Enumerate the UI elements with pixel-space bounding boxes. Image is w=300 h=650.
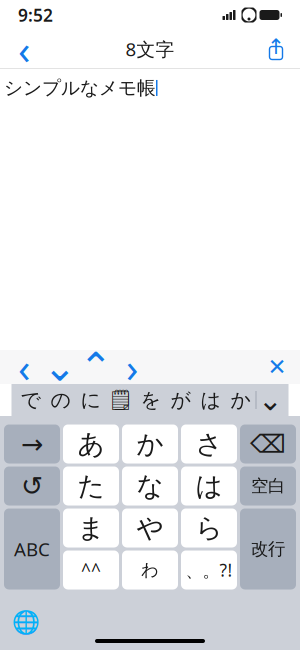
button[interactable]: ↺ <box>4 466 60 505</box>
staticText: ‹ <box>18 22 30 75</box>
staticText: さ <box>195 428 222 460</box>
staticText: あ <box>77 428 104 460</box>
button[interactable]: Next field <box>114 350 150 384</box>
button[interactable]: さ <box>181 424 237 463</box>
staticText: ⌄ <box>258 383 283 417</box>
staticText: わ <box>141 559 159 581</box>
staticText: の <box>50 388 70 412</box>
button[interactable]: は <box>181 466 237 505</box>
staticText: ↑ <box>267 34 285 59</box>
button[interactable]: Share <box>254 30 298 68</box>
staticText: 🌐 <box>12 609 40 635</box>
button[interactable]: を <box>135 385 165 415</box>
button[interactable]: Close keyboard <box>260 350 294 384</box>
staticText: ‹ <box>18 340 30 393</box>
staticText: 9:52 <box>18 3 53 26</box>
staticText: は <box>195 470 222 502</box>
staticText: ⬆ <box>267 35 284 58</box>
button[interactable]: Next <box>42 350 78 384</box>
button[interactable]: 改行 <box>240 508 296 589</box>
staticText: な <box>136 470 163 502</box>
staticText: › <box>126 340 138 393</box>
button[interactable]: な <box>122 466 178 505</box>
staticText: ⌫ <box>250 430 286 458</box>
staticText: 8文字 <box>125 37 174 61</box>
button[interactable]: Back <box>2 30 46 68</box>
button[interactable]: Notepad emoji <box>105 385 135 415</box>
button[interactable]: は <box>195 385 225 415</box>
staticText: か <box>136 428 163 460</box>
staticText: 、。?! <box>185 558 232 581</box>
staticText: → <box>21 429 43 459</box>
button[interactable]: か <box>225 385 255 415</box>
button[interactable]: Next keyboard <box>8 607 44 637</box>
staticText: ^^ <box>81 558 101 581</box>
staticText: ⌃ <box>79 344 113 390</box>
staticText: で <box>20 388 40 412</box>
button[interactable]: た <box>63 466 119 505</box>
staticText: ✕ <box>267 354 286 380</box>
staticText: 改行 <box>251 538 285 560</box>
staticText: か <box>230 388 250 412</box>
staticText: ⌄ <box>43 344 77 390</box>
button[interactable]: 空白 <box>240 466 296 505</box>
button[interactable]: ^^ <box>63 550 119 589</box>
staticText: た <box>77 470 104 502</box>
button[interactable]: Delete <box>240 424 296 463</box>
button[interactable]: わ <box>122 550 178 589</box>
staticText: ABC <box>14 537 50 561</box>
button[interactable]: ま <box>63 508 119 547</box>
staticText: ↺ <box>21 471 43 501</box>
staticText: が <box>170 388 190 412</box>
button[interactable]: や <box>122 508 178 547</box>
button[interactable]: Expand candidates <box>256 385 284 415</box>
staticText: に <box>80 388 100 412</box>
staticText: は <box>200 388 220 412</box>
button[interactable]: 、。?! <box>181 550 237 589</box>
button[interactable]: か <box>122 424 178 463</box>
staticText: 空白 <box>251 475 285 497</box>
button[interactable]: あ <box>63 424 119 463</box>
staticText: シンプルなメモ帳 <box>4 76 156 99</box>
button[interactable]: → <box>4 424 60 463</box>
button[interactable]: ら <box>181 508 237 547</box>
button[interactable]: ABC <box>4 508 60 589</box>
staticText: ま <box>77 512 104 544</box>
staticText: ら <box>195 512 222 544</box>
button[interactable]: が <box>165 385 195 415</box>
button[interactable]: Previous field <box>6 350 42 384</box>
button[interactable]: で <box>15 385 45 415</box>
staticText: や <box>136 512 163 544</box>
staticText: を <box>140 388 160 412</box>
staticText: 🗒 <box>108 389 133 411</box>
button[interactable]: Previous <box>78 350 114 384</box>
button[interactable]: の <box>45 385 75 415</box>
button[interactable]: に <box>75 385 105 415</box>
